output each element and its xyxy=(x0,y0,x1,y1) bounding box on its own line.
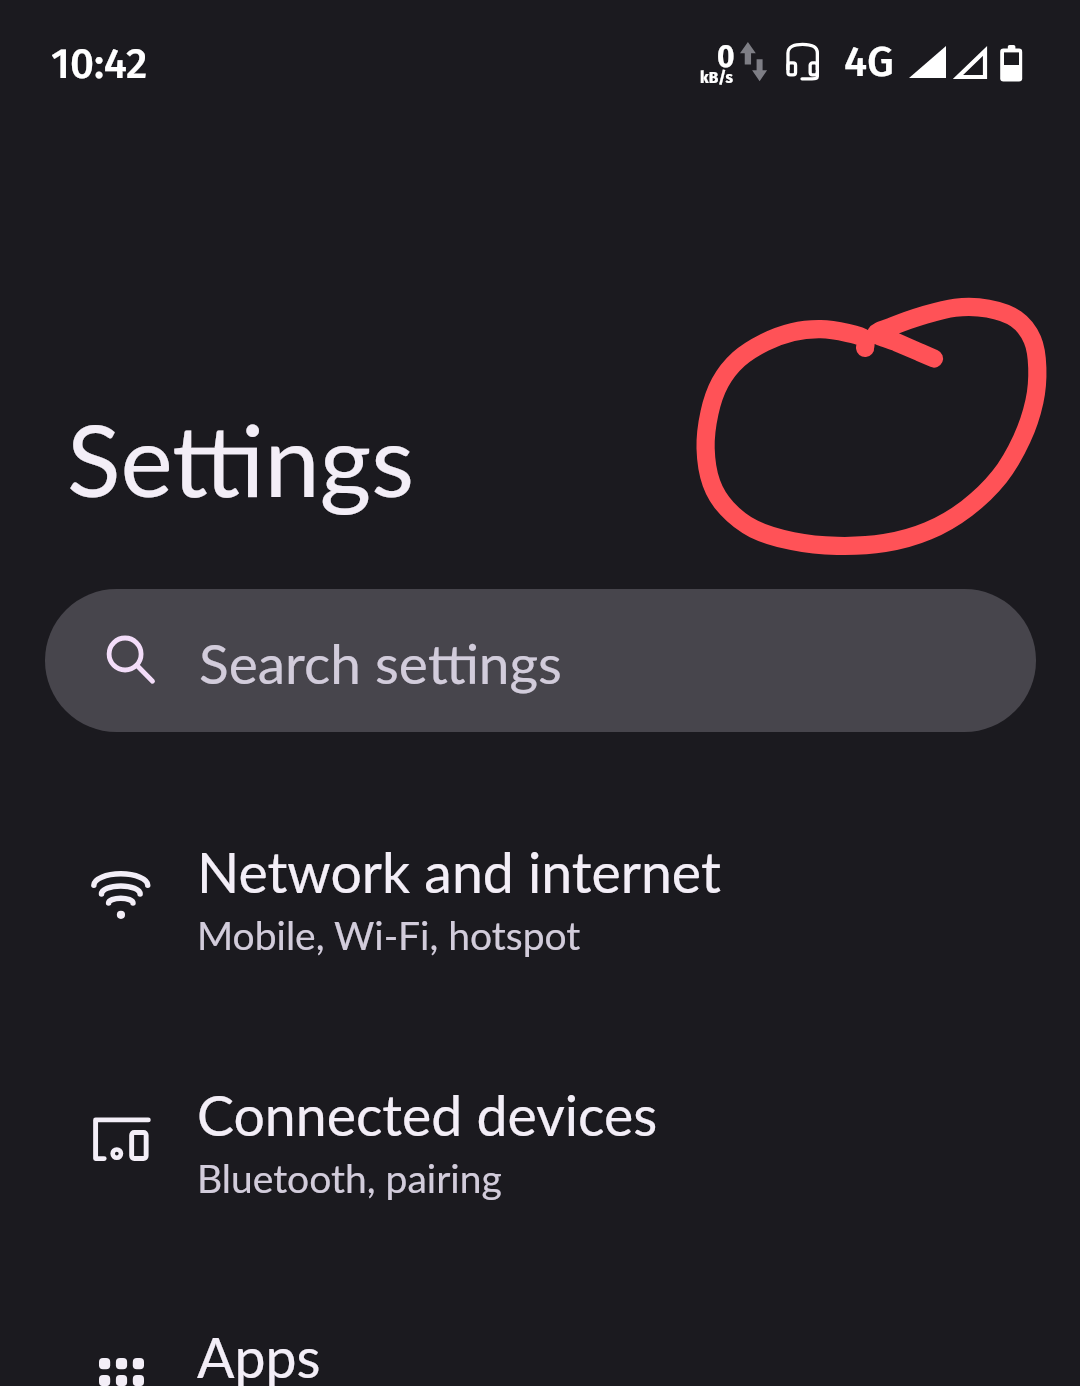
staticText: Bluetooth, pairing xyxy=(197,1155,502,1202)
staticText: Network and internet xyxy=(197,838,721,904)
staticText: Connected devices xyxy=(197,1081,658,1147)
staticText: Search settings xyxy=(199,630,562,696)
staticText: Apps xyxy=(197,1323,321,1386)
button[interactable]: Network and internet xyxy=(0,838,1080,1013)
staticText: kB/s xyxy=(700,67,734,87)
other: Headphones connected xyxy=(784,40,824,84)
staticText: Mobile, Wi-Fi, hotspot xyxy=(197,912,581,959)
button[interactable]: Apps xyxy=(0,1323,1080,1386)
staticText: Settings xyxy=(67,399,415,518)
staticText: 4G xyxy=(844,37,894,87)
button[interactable]: Search settings xyxy=(45,589,1036,732)
button[interactable]: Connected devices xyxy=(0,1081,1080,1256)
staticText: 10:42 xyxy=(51,39,148,89)
staticText: 0 xyxy=(717,39,735,75)
